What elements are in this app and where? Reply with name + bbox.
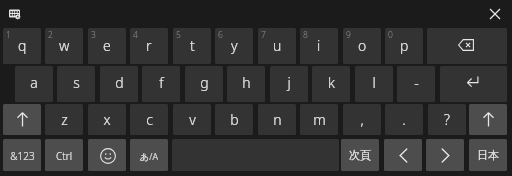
staticText: k — [328, 73, 335, 92]
staticText: 6 — [218, 29, 223, 41]
button[interactable]: 3 — [88, 28, 126, 64]
staticText: a — [30, 73, 38, 92]
button[interactable]: Ctrl — [45, 139, 83, 171]
staticText: ? — [444, 110, 450, 129]
button[interactable]: x — [88, 104, 126, 135]
staticText: 次頁 — [349, 148, 371, 162]
staticText: t — [190, 36, 195, 55]
staticText: q — [18, 36, 27, 55]
staticText: x — [103, 110, 111, 129]
button[interactable]: 日本 — [469, 139, 507, 171]
staticText: 9 — [346, 29, 351, 41]
staticText: z — [61, 110, 68, 129]
staticText: b — [230, 110, 239, 129]
button[interactable]: b — [215, 104, 253, 135]
staticText: h — [242, 73, 251, 92]
button[interactable]: Enter — [440, 66, 507, 102]
button[interactable]: Shift — [469, 104, 507, 135]
button[interactable]: 4 — [130, 28, 168, 64]
staticText: v — [189, 110, 196, 129]
staticText: j — [287, 73, 291, 92]
staticText: e — [103, 36, 111, 55]
button[interactable]: c — [130, 104, 168, 135]
button[interactable]: Keyboard settings — [4, 3, 28, 23]
button[interactable]: ? — [428, 104, 466, 135]
button[interactable]: h — [227, 66, 265, 102]
staticText: u — [273, 36, 282, 55]
button[interactable]: v — [173, 104, 211, 135]
staticText: y — [231, 36, 238, 55]
staticText: o — [358, 36, 367, 55]
button[interactable]: . — [385, 104, 423, 135]
staticText: m — [313, 110, 326, 129]
button[interactable]: a — [15, 66, 53, 102]
button[interactable]: &123 — [3, 139, 41, 171]
staticText: 4 — [133, 29, 138, 41]
button[interactable]: n — [258, 104, 296, 135]
button[interactable]: 9 — [343, 28, 381, 64]
button[interactable]: 8 — [300, 28, 338, 64]
button[interactable]: j — [270, 66, 308, 102]
button[interactable]: d — [100, 66, 138, 102]
button[interactable]: l — [355, 66, 393, 102]
button[interactable]: Backspace — [427, 28, 507, 64]
button[interactable]: 0 — [385, 28, 423, 64]
button[interactable]: s — [57, 66, 95, 102]
button[interactable]: Shift — [3, 104, 41, 135]
button[interactable]: Close — [481, 1, 509, 26]
button[interactable]: 6 — [215, 28, 253, 64]
staticText: w — [59, 36, 70, 55]
staticText: 3 — [91, 29, 96, 41]
staticText: l — [372, 73, 376, 92]
button[interactable]: 5 — [173, 28, 211, 64]
staticText: p — [400, 36, 409, 55]
button[interactable]: 1 — [3, 28, 41, 64]
staticText: 1 — [6, 29, 11, 41]
button[interactable]: Emoji — [88, 139, 126, 171]
button[interactable]: あ/A — [130, 139, 168, 171]
staticText: f — [159, 73, 164, 92]
staticText: . — [402, 110, 406, 129]
staticText: r — [146, 36, 152, 55]
staticText: i — [317, 36, 321, 55]
button[interactable]: f — [142, 66, 180, 102]
staticText: d — [115, 73, 124, 92]
button[interactable]: Next page — [426, 139, 464, 171]
staticText: s — [73, 73, 80, 92]
staticText: 日本 — [477, 148, 499, 162]
staticText: g — [200, 73, 209, 92]
staticText: あ/A — [140, 150, 158, 162]
button[interactable]: k — [312, 66, 350, 102]
staticText: &123 — [10, 149, 35, 163]
button[interactable]: 2 — [45, 28, 83, 64]
staticText: 7 — [261, 29, 266, 41]
button[interactable]: Previous page — [384, 139, 422, 171]
staticText: Ctrl — [56, 149, 72, 163]
staticText: 2 — [48, 29, 53, 41]
staticText: 5 — [176, 29, 181, 41]
staticText: 8 — [303, 29, 308, 41]
button[interactable]: 次頁 — [341, 139, 379, 171]
button[interactable]: g — [185, 66, 223, 102]
button[interactable]: 7 — [258, 28, 296, 64]
staticText: c — [146, 110, 153, 129]
button[interactable]: z — [45, 104, 83, 135]
staticText: , — [360, 110, 364, 129]
button[interactable]: m — [300, 104, 338, 135]
staticText: n — [273, 110, 282, 129]
staticText: 0 — [388, 29, 393, 41]
button[interactable]: - — [397, 66, 435, 102]
button[interactable]: , — [343, 104, 381, 135]
staticText: - — [414, 73, 419, 92]
